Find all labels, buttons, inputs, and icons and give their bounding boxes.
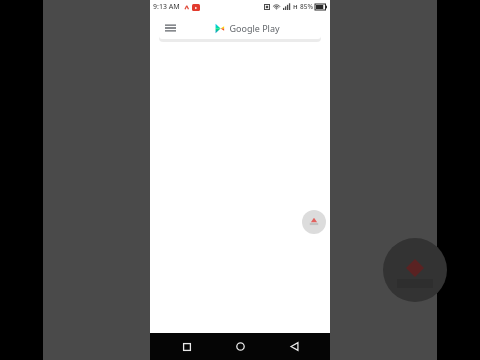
staticText: 9:13 AM bbox=[153, 2, 180, 12]
staticText: 85% bbox=[300, 2, 313, 11]
button[interactable]: Home bbox=[223, 333, 257, 360]
staticText: Google Play bbox=[229, 22, 280, 34]
staticText: H bbox=[293, 3, 298, 11]
button[interactable]: Back bbox=[277, 333, 311, 360]
button[interactable]: Recent apps bbox=[170, 333, 204, 360]
button[interactable]: Screen recorder bbox=[302, 210, 326, 234]
button[interactable]: Open navigation menu bbox=[159, 16, 182, 39]
button[interactable]: Open navigation menu bbox=[159, 16, 321, 39]
